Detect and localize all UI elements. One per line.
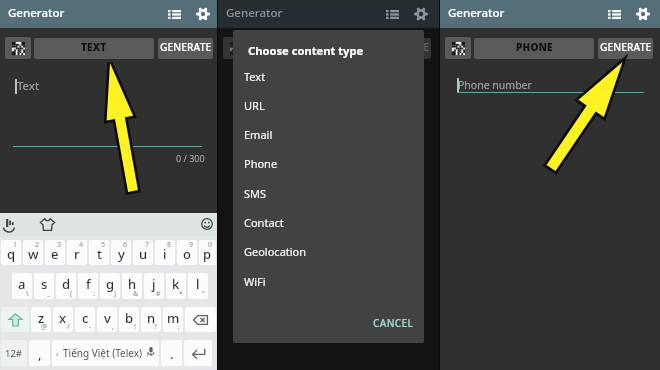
button[interactable]: Phone <box>233 149 424 178</box>
button[interactable]: URL <box>233 91 424 120</box>
button[interactable]: 1 <box>1 240 21 265</box>
button[interactable]: 6 <box>111 240 131 265</box>
button[interactable]: 0 <box>199 240 216 265</box>
button[interactable]: Settings <box>629 0 657 28</box>
staticText: n <box>147 309 156 327</box>
button[interactable]: ; <box>163 307 183 332</box>
button[interactable]: ? <box>141 307 161 332</box>
staticText: 8 <box>167 240 172 250</box>
staticText: ? <box>154 322 158 332</box>
staticText: u <box>139 245 148 263</box>
button[interactable]: _ <box>34 273 54 299</box>
button[interactable]: # <box>144 273 164 299</box>
staticText: / <box>67 322 70 332</box>
staticText: t <box>97 245 102 263</box>
staticText: l <box>196 275 200 293</box>
button[interactable]: Settings <box>189 0 217 28</box>
button[interactable]: GENERATE <box>158 38 213 59</box>
button[interactable]: TEXT <box>34 38 154 59</box>
button[interactable]: History list <box>162 0 187 28</box>
staticText: Text <box>17 78 40 94</box>
staticText: CANCEL <box>373 316 414 330</box>
button[interactable]: 3 <box>45 240 65 265</box>
button[interactable]: 8 <box>155 240 175 265</box>
staticText: b <box>125 309 134 327</box>
staticText: › <box>142 348 149 359</box>
button[interactable]: : <box>78 273 98 299</box>
staticText: SMS <box>244 186 267 201</box>
button[interactable]: . <box>161 340 182 366</box>
button[interactable]: keyboard key <box>1 307 29 332</box>
button[interactable]: @ <box>31 307 51 332</box>
staticText: - <box>89 322 92 332</box>
button[interactable]: 5 <box>89 240 109 265</box>
staticText: x <box>59 309 67 327</box>
button[interactable]: Email <box>233 120 424 149</box>
button[interactable]: History list <box>380 0 405 28</box>
staticText: , <box>112 322 114 332</box>
button[interactable]: , <box>97 307 117 332</box>
button[interactable]: Settings <box>407 0 435 28</box>
staticText: ‹ <box>56 348 63 359</box>
staticText: Phone <box>244 156 278 171</box>
staticText: m <box>167 309 180 327</box>
staticText: GENERATE <box>600 40 652 54</box>
staticText: 12# <box>5 347 23 360</box>
staticText: r <box>74 245 80 263</box>
staticText: ; <box>178 322 180 332</box>
staticText: c <box>82 309 89 327</box>
button[interactable]: keyboard key <box>185 307 216 332</box>
button[interactable]: TEXT <box>252 38 372 59</box>
button[interactable]: Scan QR code <box>445 37 471 59</box>
button[interactable]: Theme <box>40 218 55 231</box>
button[interactable]: , <box>29 340 50 366</box>
button[interactable]: keyboard key <box>184 340 212 366</box>
button[interactable]: History list <box>602 0 627 28</box>
button[interactable]: ) <box>100 273 120 299</box>
staticText: i <box>163 245 167 263</box>
staticText: a <box>18 275 26 293</box>
button[interactable]: ‹ <box>52 340 159 366</box>
staticText: . <box>170 345 174 363</box>
button[interactable]: CANCEL <box>367 312 419 334</box>
staticText: Generator <box>226 5 283 21</box>
staticText: URL <box>244 98 265 113</box>
button[interactable]: Emoji <box>201 218 213 230</box>
staticText: 0 <box>208 240 213 250</box>
button[interactable]: Text <box>233 62 424 91</box>
button[interactable]: * <box>166 273 186 299</box>
staticText: j <box>152 275 156 293</box>
button[interactable]: ! <box>119 307 139 332</box>
staticText: f <box>86 275 91 293</box>
button[interactable]: WiFi <box>233 267 424 296</box>
staticText: p <box>203 245 212 263</box>
staticText: TEXT <box>299 40 325 54</box>
button[interactable]: Scan QR code <box>5 37 31 59</box>
staticText: 6 <box>123 240 128 250</box>
button[interactable]: - <box>75 307 95 332</box>
staticText: s <box>41 275 48 293</box>
button[interactable]: 7 <box>133 240 153 265</box>
button[interactable]: GENERATE <box>598 38 653 59</box>
button[interactable]: SMS <box>233 179 424 208</box>
button[interactable]: 2 <box>23 240 43 265</box>
staticText: Generator <box>448 5 505 21</box>
button[interactable]: GENERATE <box>376 38 431 59</box>
button[interactable]: Geolocation <box>233 237 424 266</box>
staticText: , <box>38 345 42 363</box>
button[interactable]: 4 <box>67 240 87 265</box>
button[interactable]: \ <box>12 273 32 299</box>
button[interactable]: PHONE <box>474 38 594 59</box>
button[interactable]: Scan QR code <box>223 37 249 59</box>
button[interactable]: / <box>53 307 73 332</box>
button[interactable]: Contact <box>233 208 424 237</box>
button[interactable]: Sticker <box>3 219 15 232</box>
button[interactable]: & <box>122 273 142 299</box>
staticText: ( <box>70 289 73 299</box>
button[interactable]: ( <box>56 273 76 299</box>
staticText: d <box>62 275 71 293</box>
button[interactable]: " <box>188 273 208 299</box>
button[interactable]: 9 <box>177 240 197 265</box>
button[interactable]: 12# <box>1 340 27 366</box>
staticText: 2 <box>35 240 40 250</box>
